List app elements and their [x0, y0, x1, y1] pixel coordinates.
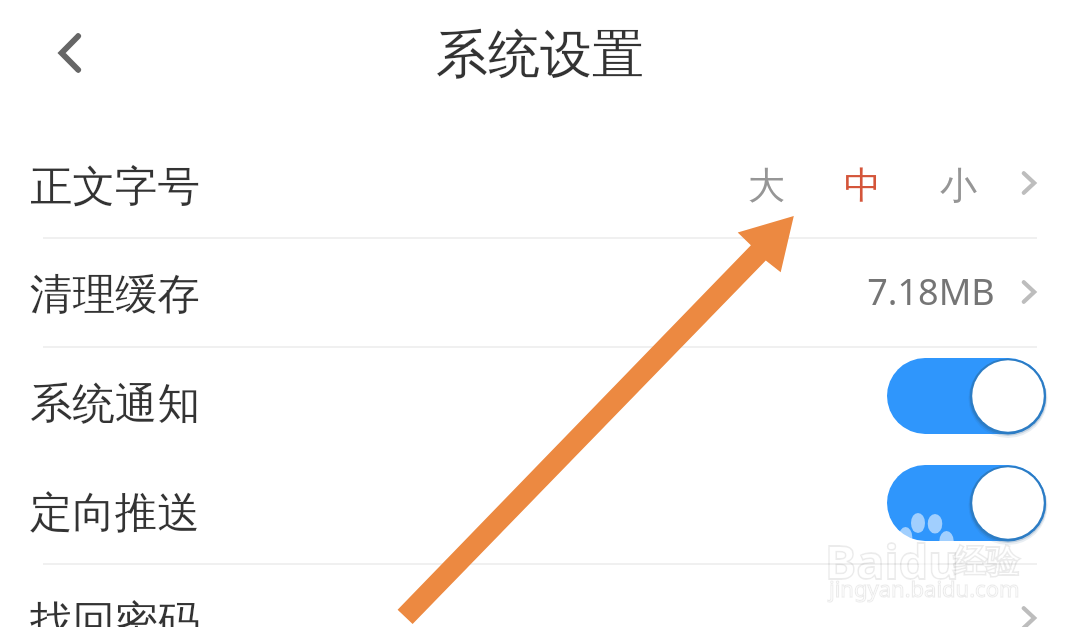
- button[interactable]: 大: [728, 149, 804, 217]
- staticText: 定向推送: [30, 486, 200, 540]
- staticText: 7.18MB: [867, 267, 995, 316]
- staticText: jingyan.baidu.com: [829, 573, 1020, 603]
- staticText: 中: [844, 162, 881, 209]
- button[interactable]: 系统通知: [0, 346, 1080, 455]
- button[interactable]: Retrieve password: [995, 584, 1063, 627]
- staticText: Baidu: [825, 529, 959, 593]
- button[interactable]: 中: [824, 149, 900, 217]
- staticText: 找回密码: [30, 595, 200, 627]
- button[interactable]: 正文字号: [0, 129, 1080, 238]
- button[interactable]: 清理缓存: [0, 237, 1080, 346]
- button[interactable]: 找回密码: [0, 564, 1080, 627]
- button[interactable]: Back: [34, 25, 106, 81]
- button[interactable]: System notifications: [887, 358, 1046, 434]
- staticText: 经验: [953, 541, 1019, 583]
- button[interactable]: Clear cache: [995, 258, 1063, 326]
- staticText: 清理缓存: [30, 268, 200, 322]
- staticText: 大: [748, 162, 785, 209]
- button[interactable]: 定向推送: [0, 455, 1080, 564]
- button[interactable]: 小: [920, 149, 996, 217]
- staticText: 系统通知: [30, 377, 200, 431]
- staticText: 系统设置: [436, 22, 644, 88]
- staticText: 正文字号: [30, 160, 200, 214]
- button[interactable]: Targeted push: [887, 465, 1046, 541]
- staticText: 小: [940, 162, 977, 209]
- button[interactable]: Text size settings: [995, 149, 1063, 217]
